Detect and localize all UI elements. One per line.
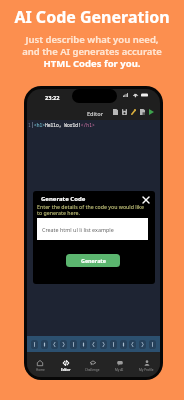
staticText: 1	[28, 122, 31, 128]
button[interactable]: Challenge	[79, 352, 106, 377]
staticText: Just describe what you need, and the AI …	[22, 33, 162, 70]
button[interactable]: Tools	[131, 109, 136, 115]
button[interactable]: Generate	[66, 254, 120, 267]
staticText: AI Code Generation	[14, 6, 170, 28]
button[interactable]: Key 6	[90, 340, 97, 349]
button[interactable]: Key 9	[120, 340, 127, 349]
staticText: Editor	[61, 368, 71, 372]
button[interactable]: Key 7	[100, 340, 107, 349]
button[interactable]: Key 8	[110, 340, 117, 349]
button[interactable]: Run	[149, 109, 154, 115]
button[interactable]: Home	[27, 352, 53, 377]
staticText: Editor	[87, 110, 104, 118]
staticText: Create html ul li list example	[42, 226, 114, 233]
button[interactable]: New file	[140, 109, 145, 115]
button[interactable]: Key 0	[31, 340, 38, 349]
button[interactable]: My Profile	[133, 352, 160, 377]
button[interactable]: Key 11	[139, 340, 146, 349]
staticText: Generate	[81, 257, 106, 264]
button[interactable]: Key 1	[41, 340, 48, 349]
button[interactable]: Key 5	[80, 340, 87, 349]
button[interactable]: Key 3	[60, 340, 67, 349]
button[interactable]: My AI	[106, 352, 133, 377]
staticText: Home	[36, 368, 45, 372]
staticText: My Profile	[139, 368, 154, 372]
staticText: <h1>Hello, World!</h1>	[34, 122, 95, 128]
staticText: Challenge	[85, 368, 100, 372]
button[interactable]: Key 4	[70, 340, 77, 349]
staticText: Generate Code	[41, 195, 86, 203]
staticText: 23:22	[45, 94, 60, 102]
staticText: Enter the details of the code you would …	[37, 203, 147, 216]
button[interactable]: Close	[141, 195, 150, 204]
button[interactable]: Save	[122, 109, 127, 115]
button[interactable]: Editor	[53, 352, 79, 377]
staticText: My AI	[115, 368, 124, 372]
button[interactable]: Key 10	[129, 340, 136, 349]
button[interactable]: Key 2	[51, 340, 58, 349]
button[interactable]: Create html ul li list example	[37, 218, 148, 240]
button[interactable]: Copy	[113, 109, 118, 115]
button[interactable]: Key 12	[149, 340, 156, 349]
